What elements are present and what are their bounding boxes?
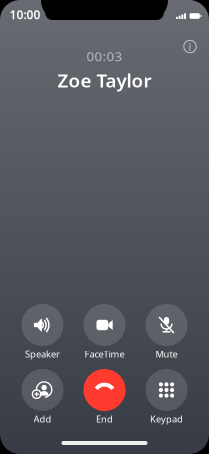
button[interactable]: Keypad [135,369,197,427]
staticText: Speaker [25,348,60,360]
staticText: Zoe Taylor [57,68,151,93]
button[interactable]: FaceTime [73,304,135,362]
staticText: FaceTime [84,348,124,360]
staticText: Mute [155,348,177,360]
staticText: 10:00 [9,6,40,22]
button[interactable]: Call details [176,32,204,60]
button[interactable]: End [73,369,135,427]
staticText: End [96,413,113,425]
staticText: Keypad [150,413,183,425]
staticText: 00:03 [86,47,122,65]
staticText: Add [33,413,51,425]
button[interactable]: Add [11,369,73,427]
staticText: i [188,39,191,54]
button[interactable]: Mute [135,304,197,362]
button[interactable]: Speaker [11,304,73,362]
